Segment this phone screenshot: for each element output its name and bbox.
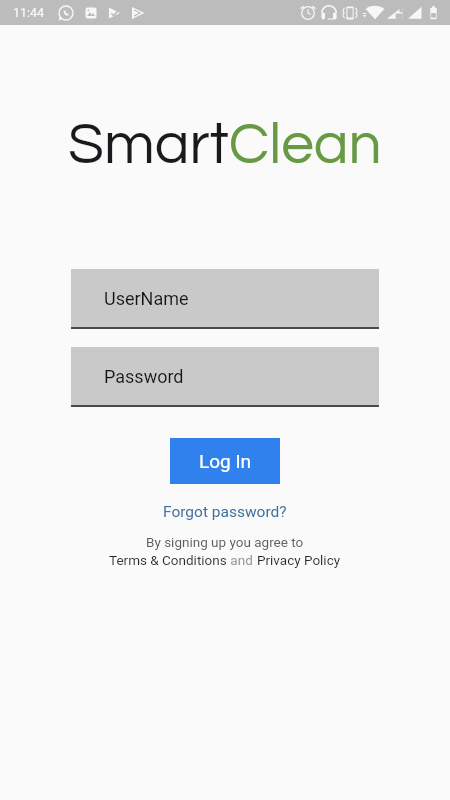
staticText: and	[227, 552, 257, 568]
button[interactable]: Terms & Conditions	[109, 552, 227, 568]
staticText: Forgot password?	[163, 503, 287, 521]
button[interactable]: UserName	[71, 269, 379, 327]
staticText: Password	[104, 366, 184, 387]
button[interactable]: Forgot password?	[163, 503, 287, 521]
staticText: By signing up you agree to	[146, 534, 304, 550]
staticText: 11:44	[13, 5, 45, 20]
staticText: Log In	[199, 450, 252, 472]
button[interactable]: Password	[71, 347, 379, 405]
staticText: UserName	[104, 288, 189, 309]
button[interactable]: Privacy Policy	[257, 552, 341, 568]
staticText: SmartClean	[68, 115, 382, 175]
button[interactable]: Log In	[170, 438, 280, 484]
